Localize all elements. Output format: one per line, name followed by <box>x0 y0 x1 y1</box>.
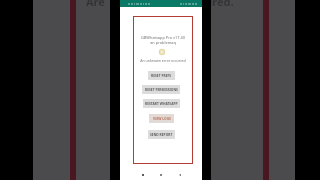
button[interactable]: RESTART WHATSAPP <box>143 99 180 107</box>
staticText: RESET PREFS <box>151 73 172 77</box>
staticText: An unknown error occurred <box>140 58 186 63</box>
staticText: GBWhatsapp Pro v17.40 an problemaq <box>141 35 185 45</box>
button[interactable]: RESET PERMISSIONS <box>142 85 180 93</box>
button[interactable]: SEND REPORT <box>148 130 175 138</box>
button[interactable]: Home <box>157 171 164 178</box>
button[interactable]: RESET PREFS <box>148 71 175 79</box>
staticText: VIEW LOGS <box>153 116 171 120</box>
staticText: Are <box>86 0 105 6</box>
button[interactable]: VIEW LOGS <box>149 114 174 122</box>
button[interactable]: Back <box>176 171 183 178</box>
staticText: SEND REPORT <box>150 132 173 136</box>
staticText: RESET PERMISSIONS <box>145 87 178 91</box>
button[interactable]: Recents <box>139 171 146 178</box>
staticText: RESTART WHATSAPP <box>145 101 178 105</box>
staticText: ired. <box>209 0 234 6</box>
